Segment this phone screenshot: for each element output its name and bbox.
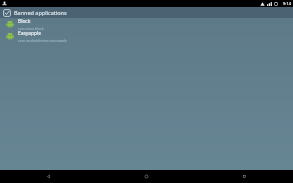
staticText: com.androidmime.easyapple	[18, 38, 68, 42]
button[interactable]: Application icon	[0, 18, 293, 30]
staticText: Block	[18, 18, 31, 25]
button[interactable]: Home	[97, 170, 195, 183]
other: Application icon	[6, 32, 14, 40]
other: App icon	[3, 9, 11, 17]
staticText: 9:14	[283, 1, 291, 6]
staticText: com.easy.block	[18, 26, 44, 30]
other: Application icon	[6, 20, 14, 28]
button[interactable]: Back	[0, 170, 97, 183]
button[interactable]: Recent apps	[195, 170, 293, 183]
button[interactable]: Application icon	[0, 30, 293, 42]
staticText: Easyapple	[18, 30, 42, 37]
button[interactable]: App icon	[0, 7, 293, 18]
staticText: Banned applications	[14, 9, 67, 16]
